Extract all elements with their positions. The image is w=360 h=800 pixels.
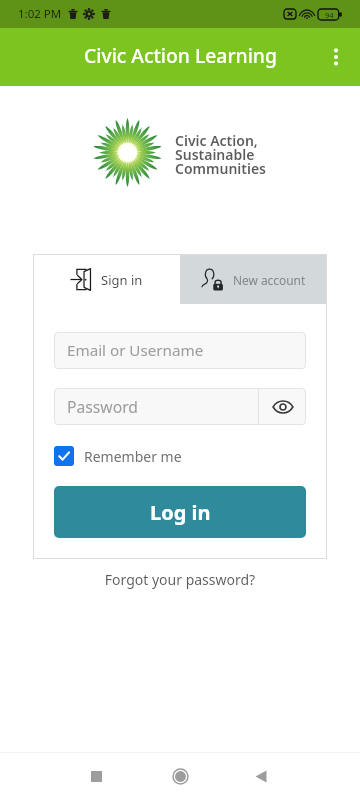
- staticText: 1:02 PM: [18, 6, 62, 22]
- staticText: Civic Action Learning: [84, 42, 277, 68]
- button[interactable]: Home: [156, 753, 204, 800]
- button[interactable]: Recents: [72, 753, 120, 800]
- button[interactable]: Forgot your password?: [0, 570, 360, 589]
- button[interactable]: Show password: [259, 388, 306, 425]
- staticText: 94: [325, 10, 334, 20]
- button[interactable]: Remember me: [54, 446, 182, 466]
- button[interactable]: Sign in: [33, 254, 180, 304]
- staticText: Civic Action, Sustainable Communities: [175, 131, 267, 178]
- button[interactable]: New account: [180, 254, 327, 304]
- staticText: New account: [233, 272, 306, 288]
- button[interactable]: Password: [54, 388, 258, 425]
- staticText: Email or Username: [67, 340, 204, 361]
- button[interactable]: More options: [312, 33, 360, 81]
- staticText: Remember me: [84, 447, 182, 466]
- staticText: Password: [67, 396, 138, 417]
- button[interactable]: Back: [237, 753, 285, 800]
- button[interactable]: Email or Username: [54, 332, 306, 369]
- button[interactable]: Log in: [54, 486, 306, 538]
- staticText: Log in: [150, 499, 211, 526]
- staticText: Sign in: [101, 271, 143, 289]
